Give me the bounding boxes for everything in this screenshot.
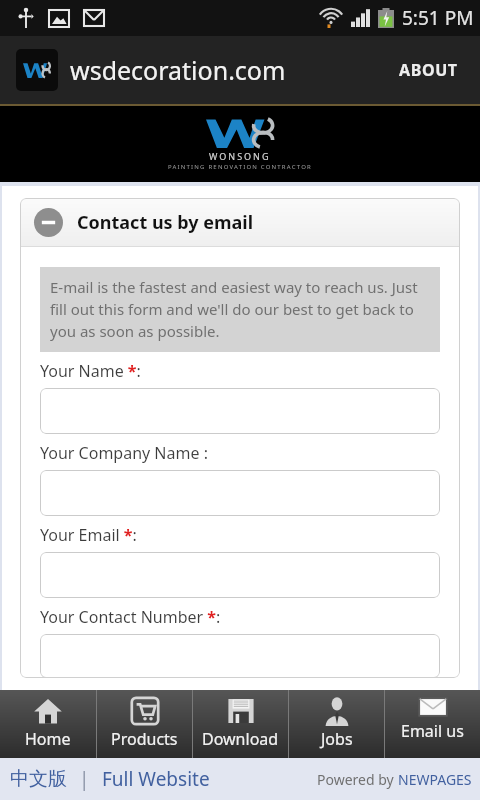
button[interactable]: Download: [193, 690, 288, 758]
button[interactable]: [40, 388, 440, 434]
staticText: 中文版: [10, 767, 67, 791]
staticText: Powered by: [317, 770, 398, 789]
staticText: PAINTING RENOVATION CONTRACTOR: [168, 163, 312, 171]
button[interactable]: 中文版: [8, 767, 69, 791]
staticText: Contact us by email: [77, 210, 254, 235]
button[interactable]: Email us: [385, 690, 480, 758]
staticText: Home: [25, 728, 71, 750]
staticText: Your Name *:: [40, 360, 141, 382]
staticText: WONSONG: [209, 150, 271, 162]
staticText: E-mail is the fastest and easiest way to…: [50, 277, 430, 342]
staticText: |: [69, 766, 100, 792]
button[interactable]: Full Website: [100, 766, 212, 792]
staticText: Your Company Name :: [40, 442, 208, 464]
button[interactable]: Jobs: [289, 690, 384, 758]
staticText: 5:51 PM: [402, 5, 474, 31]
staticText: Jobs: [321, 728, 353, 750]
button[interactable]: [40, 470, 440, 516]
staticText: Full Website: [102, 766, 210, 792]
staticText: Download: [202, 728, 279, 750]
staticText: Email us: [401, 720, 464, 742]
staticText: Products: [111, 728, 178, 750]
button[interactable]: Contact us by email: [20, 198, 460, 246]
button[interactable]: [40, 552, 440, 598]
staticText: NEWPAGES: [398, 770, 472, 789]
button[interactable]: ABOUT: [393, 49, 464, 91]
staticText: Your Contact Number *:: [40, 606, 221, 628]
button[interactable]: Home: [0, 690, 96, 758]
staticText: Your Email *:: [40, 524, 137, 546]
button[interactable]: [40, 634, 440, 678]
staticText: ABOUT: [399, 59, 458, 81]
button[interactable]: Products: [97, 690, 192, 758]
staticText: wsdecoration.com: [70, 53, 286, 87]
